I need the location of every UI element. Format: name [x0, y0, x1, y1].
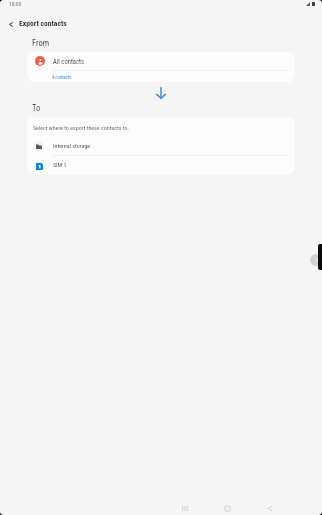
button[interactable]: Back: [256, 499, 284, 515]
button[interactable]: All contacts: [27, 52, 295, 70]
button[interactable]: Navigate up: [4, 17, 18, 31]
staticText: Internal storage: [53, 142, 91, 149]
button[interactable]: Recent apps: [171, 499, 199, 515]
staticText: SIM 1: [53, 161, 67, 168]
staticText: All contacts: [53, 58, 85, 66]
staticText: 10:00: [9, 1, 22, 8]
button[interactable]: Edge panel handle: [310, 244, 322, 270]
button[interactable]: SIM 1: [27, 156, 295, 175]
button[interactable]: 4 contacts: [27, 71, 295, 82]
staticText: Export contacts: [19, 19, 67, 28]
staticText: From: [32, 38, 50, 48]
button[interactable]: Internal storage: [27, 137, 295, 155]
staticText: Select where to export these contacts to…: [33, 124, 129, 131]
staticText: To: [32, 103, 41, 113]
button[interactable]: Home: [213, 499, 241, 515]
staticText: 4 contacts: [52, 75, 72, 80]
